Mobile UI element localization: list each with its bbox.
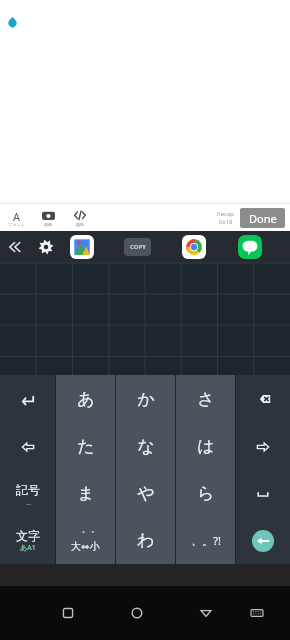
- staticText: フォント: [8, 222, 25, 227]
- staticText: 文字: [16, 528, 40, 543]
- button[interactable]: 、。?!: [176, 517, 235, 564]
- button[interactable]: Format text: [0, 204, 32, 231]
- button[interactable]: Enter: [236, 517, 290, 564]
- button[interactable]: Undo: [0, 375, 55, 423]
- button[interactable]: ら: [176, 470, 235, 517]
- button[interactable]: 文字: [0, 517, 55, 564]
- staticText: や: [137, 483, 155, 504]
- staticText: さ: [197, 389, 215, 410]
- staticText: hecap: [217, 210, 235, 218]
- button[interactable]: Insert image: [32, 204, 64, 231]
- button[interactable]: さ: [176, 375, 235, 423]
- button[interactable]: Google Photos: [70, 235, 94, 259]
- staticText: か: [137, 389, 155, 410]
- staticText: A: [13, 209, 21, 222]
- staticText: は: [197, 436, 215, 457]
- button[interactable]: Space: [236, 470, 290, 517]
- button[interactable]: 記号: [0, 470, 55, 517]
- button[interactable]: Collapse toolbar: [0, 231, 30, 263]
- button[interactable]: Copy: [124, 238, 151, 256]
- button[interactable]: LINE: [238, 235, 262, 259]
- button[interactable]: ゛゜: [56, 517, 115, 564]
- staticText: わ: [137, 530, 155, 551]
- staticText: ら: [197, 483, 215, 504]
- staticText: な: [137, 436, 155, 457]
- button[interactable]: か: [116, 375, 175, 423]
- button[interactable]: あ: [56, 375, 115, 423]
- button[interactable]: Done: [240, 208, 285, 228]
- button[interactable]: Move cursor right: [236, 423, 290, 470]
- staticText: ＿: [25, 497, 32, 506]
- staticText: 、。?!: [191, 533, 221, 548]
- staticText: 画像: [44, 222, 52, 227]
- button[interactable]: Chrome: [182, 235, 206, 259]
- button[interactable]: ま: [56, 470, 115, 517]
- button[interactable]: Recent apps: [53, 598, 83, 628]
- button[interactable]: た: [56, 423, 115, 470]
- staticText: 大⇔小: [71, 540, 100, 553]
- button[interactable]: な: [116, 423, 175, 470]
- staticText: 0x18: [219, 218, 233, 226]
- staticText: あA1: [20, 543, 36, 553]
- button[interactable]: Move cursor left: [0, 423, 55, 470]
- button[interactable]: Switch keyboard: [242, 598, 272, 628]
- button[interactable]: Backspace: [236, 375, 290, 423]
- staticText: 開発: [76, 222, 84, 227]
- button[interactable]: Settings: [30, 231, 62, 263]
- staticText: 記号: [16, 482, 40, 497]
- staticText: あ: [77, 389, 95, 410]
- staticText: た: [77, 436, 95, 457]
- staticText: COPY: [130, 243, 146, 251]
- button[interactable]: は: [176, 423, 235, 470]
- staticText: ゛゜: [76, 529, 95, 540]
- staticText: ま: [77, 483, 95, 504]
- button[interactable]: や: [116, 470, 175, 517]
- button[interactable]: Home: [122, 598, 152, 628]
- staticText: Done: [249, 211, 277, 226]
- button[interactable]: Back: [191, 598, 221, 628]
- button[interactable]: Insert code: [64, 204, 96, 231]
- button[interactable]: わ: [116, 517, 175, 564]
